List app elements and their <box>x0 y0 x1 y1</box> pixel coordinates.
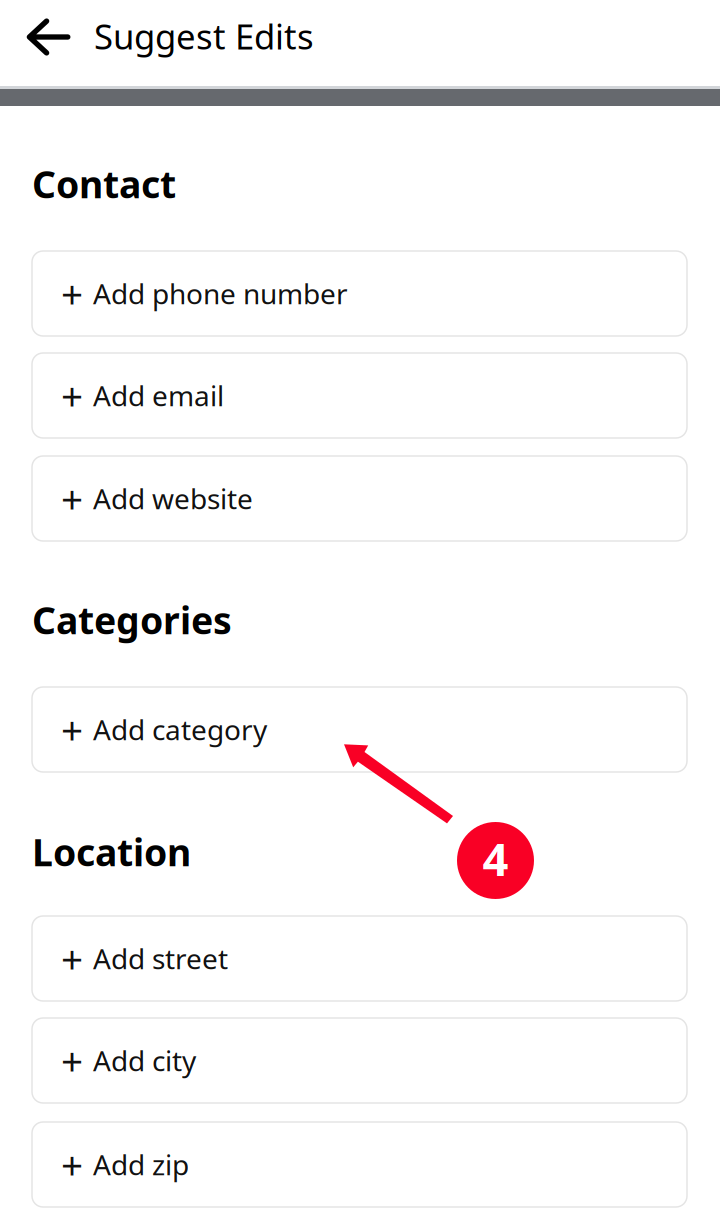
button[interactable]: + <box>32 687 687 772</box>
staticText: + <box>61 370 83 421</box>
staticText: Contact <box>32 159 176 209</box>
button[interactable]: + <box>32 353 687 438</box>
staticText: + <box>61 1035 83 1086</box>
button[interactable]: + <box>32 456 687 541</box>
staticText: Add city <box>93 1042 196 1079</box>
button[interactable]: + <box>32 1122 687 1207</box>
staticText: + <box>61 704 83 755</box>
staticText: Add street <box>93 940 228 977</box>
staticText: Add zip <box>93 1146 189 1183</box>
staticText: 4 <box>482 828 508 889</box>
staticText: + <box>61 933 83 984</box>
button[interactable]: + <box>32 916 687 1001</box>
staticText: Location <box>32 827 191 877</box>
button[interactable]: Back <box>5 0 93 81</box>
staticText: + <box>61 268 83 319</box>
staticText: + <box>61 1139 83 1190</box>
staticText: Suggest Edits <box>94 13 314 59</box>
button[interactable]: + <box>32 251 687 336</box>
staticText: Categories <box>32 595 232 645</box>
button[interactable]: + <box>32 1018 687 1103</box>
staticText: Add email <box>93 377 224 414</box>
staticText: + <box>61 473 83 524</box>
staticText: Add website <box>93 480 253 517</box>
staticText: Add phone number <box>93 275 348 312</box>
staticText: Add category <box>93 711 267 748</box>
